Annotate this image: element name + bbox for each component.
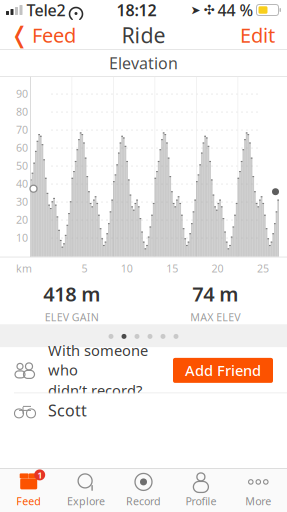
- button[interactable]: Record: [115, 468, 172, 512]
- staticText: 30: [16, 195, 28, 209]
- staticText: 418 m: [43, 280, 100, 307]
- staticText: Ride: [121, 21, 165, 49]
- staticText: Add Friend: [185, 361, 261, 380]
- staticText: didn’t record?: [48, 381, 142, 400]
- staticText: 10: [121, 261, 133, 275]
- staticText: 90: [16, 87, 28, 101]
- staticText: 50: [16, 159, 28, 173]
- staticText: Feed: [16, 494, 41, 508]
- staticText: 40: [16, 177, 28, 191]
- button[interactable]: Edit: [230, 20, 285, 50]
- button[interactable]: More: [230, 468, 287, 512]
- staticText: Scott: [48, 400, 87, 421]
- staticText: More: [245, 494, 271, 508]
- staticText: 1: [37, 469, 42, 481]
- staticText: MAX ELEV: [190, 310, 240, 324]
- staticText: ✣: [203, 2, 214, 17]
- staticText: With someone who: [48, 341, 148, 380]
- staticText: km: [16, 261, 32, 275]
- staticText: 70: [16, 123, 28, 137]
- staticText: ELEV GAIN: [45, 310, 99, 324]
- staticText: Tele2: [26, 0, 65, 21]
- staticText: ➤: [190, 3, 200, 17]
- button[interactable]: Scott: [0, 393, 287, 427]
- button[interactable]: ❬: [2, 20, 84, 50]
- button[interactable]: Explore: [57, 468, 115, 512]
- staticText: 74 m: [192, 280, 238, 307]
- staticText: 80: [16, 105, 28, 119]
- staticText: 60: [16, 141, 28, 155]
- staticText: Explore: [67, 494, 105, 508]
- button[interactable]: Profile: [172, 468, 230, 512]
- button[interactable]: Add Friend: [173, 358, 273, 383]
- staticText: 20: [212, 261, 224, 275]
- staticText: Feed: [32, 22, 76, 48]
- staticText: 20: [16, 213, 28, 227]
- staticText: ❬: [10, 22, 29, 48]
- staticText: Elevation: [109, 52, 178, 74]
- staticText: Profile: [185, 494, 216, 508]
- staticText: 44 %: [217, 0, 253, 21]
- staticText: 25: [257, 261, 269, 275]
- button[interactable]: Feed: [0, 468, 57, 512]
- staticText: 18:12: [116, 0, 156, 21]
- staticText: Edit: [240, 22, 275, 48]
- staticText: 15: [166, 261, 178, 275]
- staticText: 10: [16, 231, 28, 245]
- staticText: Record: [126, 494, 161, 508]
- staticText: 5: [81, 261, 87, 275]
